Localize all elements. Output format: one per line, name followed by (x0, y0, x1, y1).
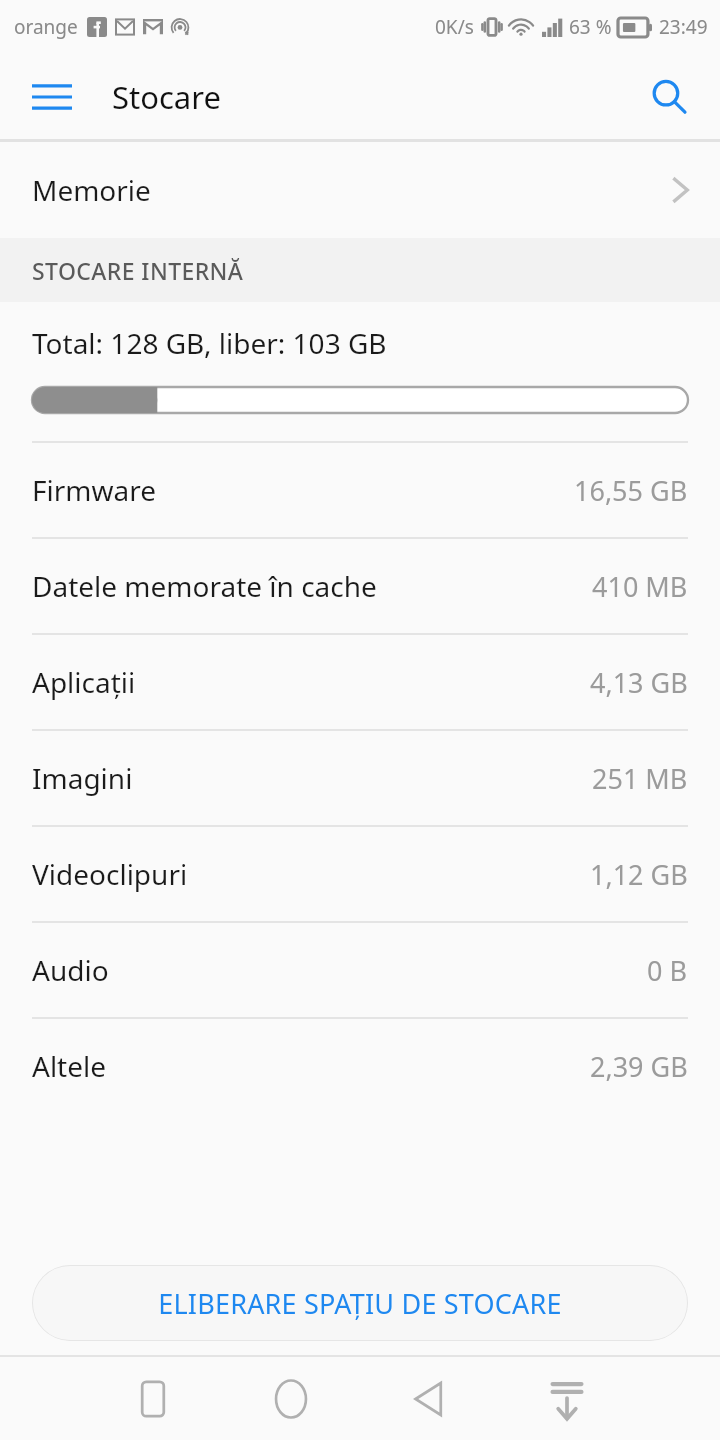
button[interactable]: Notifications (522, 1357, 612, 1440)
button[interactable]: Recents (108, 1357, 198, 1440)
button[interactable]: Home (246, 1357, 336, 1440)
staticText: STOCARE INTERNĂ (32, 255, 244, 286)
button[interactable]: Back (384, 1357, 474, 1440)
button[interactable]: Videoclipuri (0, 827, 720, 921)
button[interactable]: Datele memorate în cache (0, 539, 720, 633)
staticText: Altele (32, 1047, 107, 1085)
staticText: 1,12 GB (590, 856, 688, 893)
staticText: 0K/s (435, 14, 474, 40)
staticText: Memorie (32, 171, 151, 209)
staticText: 63 % (569, 14, 612, 40)
staticText: Stocare (112, 76, 221, 118)
staticText: 16,55 GB (574, 472, 688, 509)
staticText: orange (14, 14, 78, 40)
staticText: Videoclipuri (32, 855, 188, 893)
staticText: Audio (32, 951, 109, 989)
button[interactable]: Search (640, 68, 698, 126)
staticText: 2,39 GB (590, 1048, 688, 1085)
button[interactable]: Aplicații (0, 635, 720, 729)
staticText: 251 MB (592, 760, 688, 797)
staticText: Firmware (32, 471, 157, 509)
button[interactable]: Audio (0, 923, 720, 1017)
staticText: ELIBERARE SPAȚIU DE STOCARE (158, 1285, 562, 1322)
button[interactable]: Firmware (0, 443, 720, 537)
button[interactable]: Imagini (0, 731, 720, 825)
staticText: Total: 128 GB, liber: 103 GB (32, 324, 387, 362)
staticText: 4,13 GB (590, 664, 688, 701)
staticText: 410 MB (592, 568, 688, 605)
staticText: Aplicații (32, 663, 136, 701)
button[interactable]: ELIBERARE SPAȚIU DE STOCARE (32, 1265, 688, 1341)
button[interactable]: Altele (0, 1019, 720, 1113)
staticText: 0 B (647, 952, 688, 989)
button[interactable]: Memorie (0, 142, 720, 238)
button[interactable]: Menu (24, 69, 80, 125)
staticText: 23:49 (659, 14, 708, 40)
staticText: Imagini (32, 759, 133, 797)
staticText: Datele memorate în cache (32, 567, 377, 605)
